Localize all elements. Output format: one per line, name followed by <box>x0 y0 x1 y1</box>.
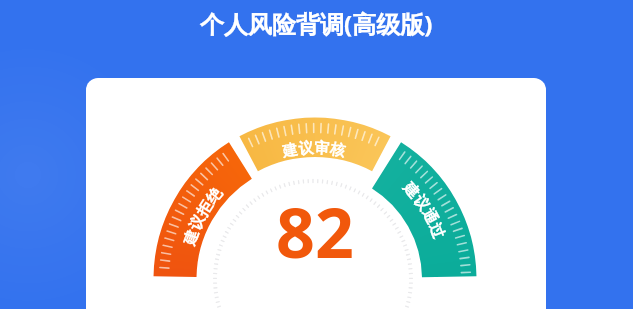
staticText: 议 <box>409 192 433 215</box>
staticText: 建 <box>399 179 423 203</box>
staticText: 拒 <box>193 197 217 220</box>
staticText: 82 <box>276 184 354 277</box>
staticText: 建 <box>180 227 203 248</box>
staticText: 议 <box>298 139 314 159</box>
staticText: 个人风险背调(高级版) <box>200 7 433 40</box>
staticText: 议 <box>185 212 209 234</box>
staticText: 建 <box>281 140 299 162</box>
staticText: 通 <box>418 206 442 228</box>
staticText: 核 <box>329 140 347 161</box>
staticText: 过 <box>425 221 448 242</box>
staticText: 审 <box>314 139 330 159</box>
staticText: 绝 <box>202 184 226 208</box>
